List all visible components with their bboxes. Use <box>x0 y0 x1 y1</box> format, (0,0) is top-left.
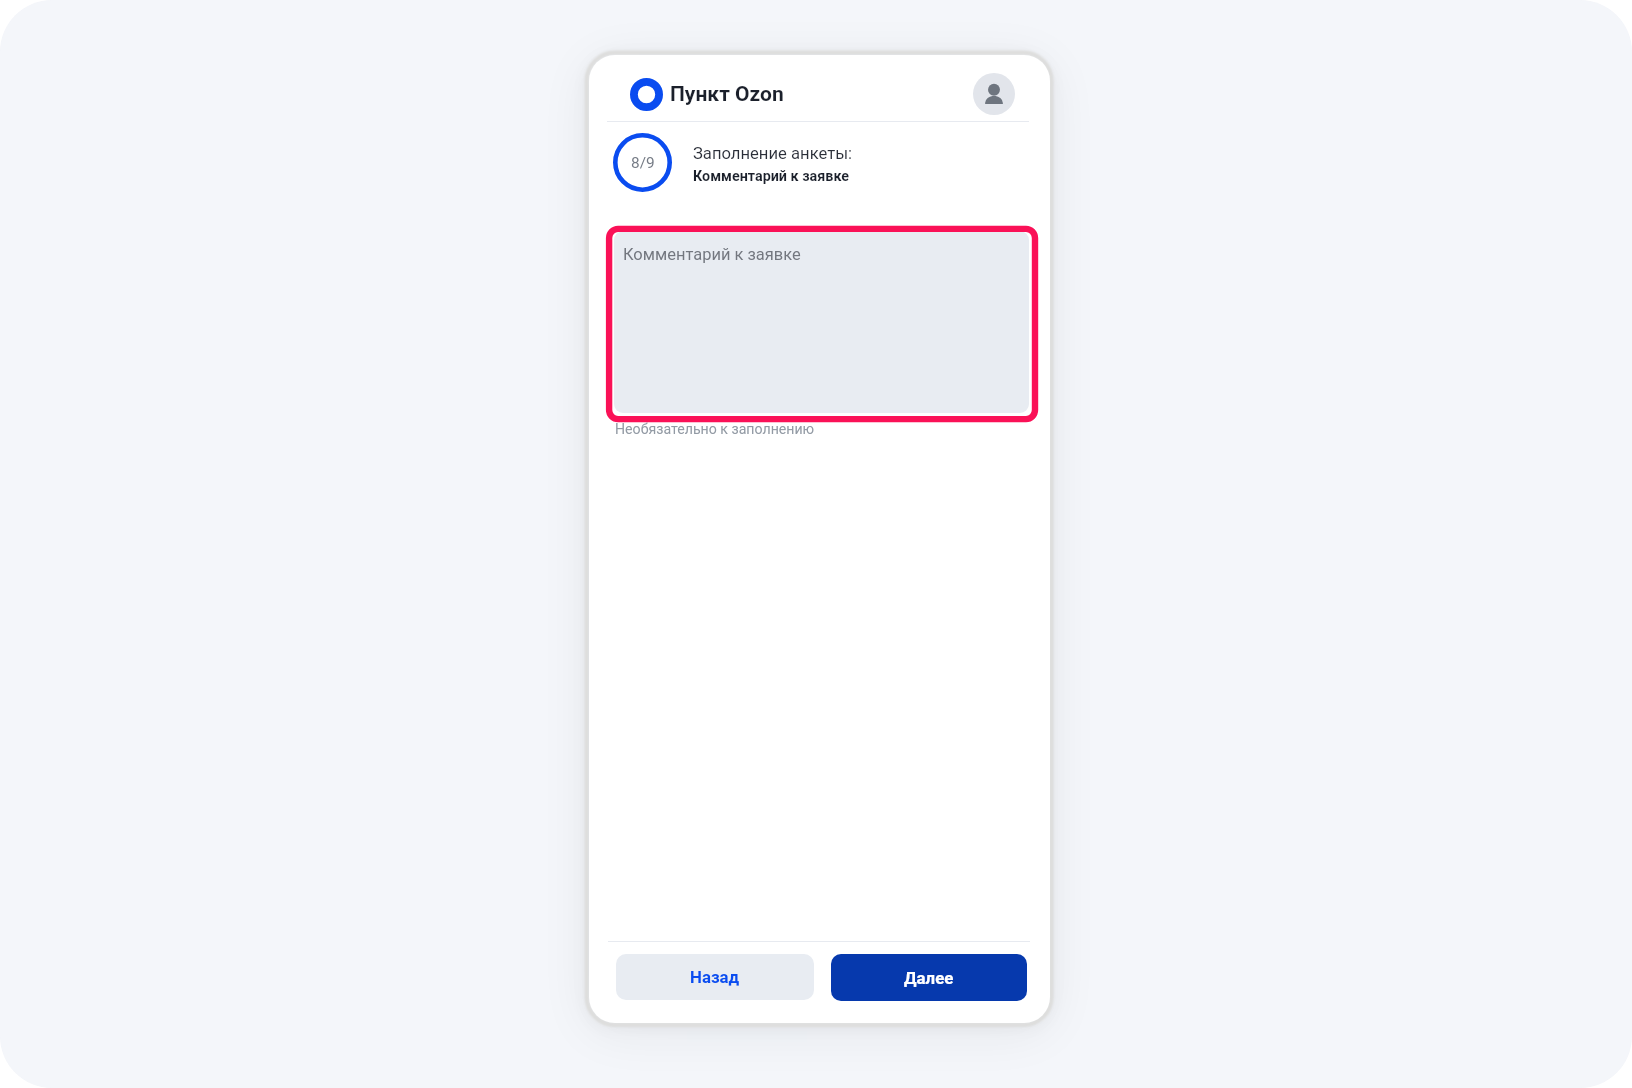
staticText: Далее <box>904 968 954 988</box>
staticText: Необязательно к заполнению <box>615 421 815 438</box>
staticText: Заполнение анкеты: <box>693 144 853 163</box>
staticText: Комментарий к заявке <box>693 168 850 185</box>
staticText: Назад <box>690 967 740 987</box>
button[interactable]: Далее <box>831 954 1027 1001</box>
button[interactable]: Комментарий к заявке <box>614 231 1029 413</box>
button[interactable]: Profile <box>973 73 1015 115</box>
staticText: Пункт Ozon <box>670 82 784 107</box>
staticText: Комментарий к заявке <box>623 245 801 264</box>
button[interactable]: Назад <box>616 954 814 1000</box>
staticText: 8/9 <box>631 154 655 172</box>
